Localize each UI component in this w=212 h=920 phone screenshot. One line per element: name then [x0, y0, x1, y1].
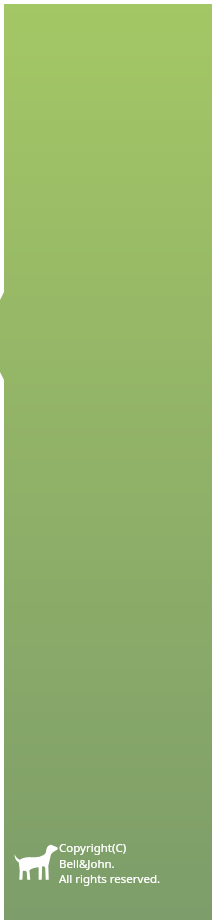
button[interactable]: Bell and John copyright banner — [0, 0, 212, 920]
